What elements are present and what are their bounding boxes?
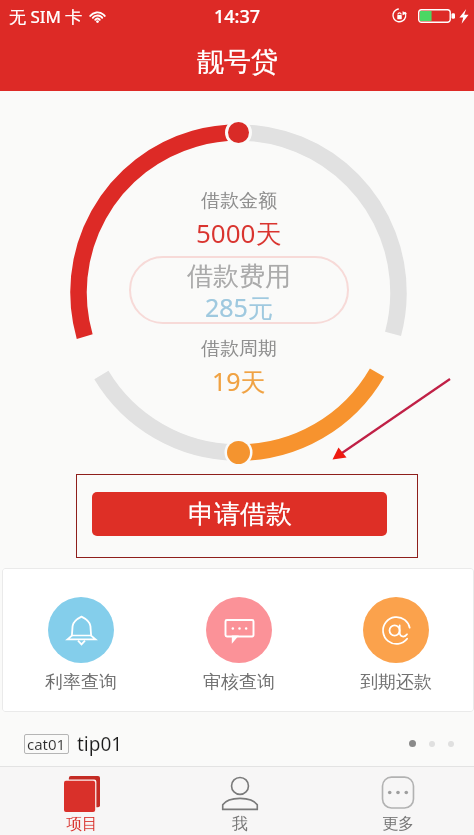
staticText: 靓号贷 <box>197 45 278 79</box>
button[interactable]: 审核查询 <box>160 568 317 712</box>
staticText: 借款费用 <box>187 260 291 293</box>
staticText: 借款周期 <box>201 337 277 361</box>
staticText: 项目 <box>66 814 98 834</box>
staticText: 285元 <box>205 290 273 324</box>
staticText: 5000天 <box>196 215 282 251</box>
button[interactable]: 项目 <box>3 767 161 835</box>
staticText: 我 <box>232 814 248 834</box>
staticText: 19天 <box>212 364 266 398</box>
staticText: 利率查询 <box>45 671 117 694</box>
staticText: 借款金额 <box>201 189 277 213</box>
staticText: 到期还款 <box>360 671 432 694</box>
button[interactable]: 申请借款 <box>92 492 387 536</box>
staticText: tip01 <box>77 731 123 757</box>
staticText: 更多 <box>382 814 414 834</box>
staticText: 14:37 <box>214 4 261 29</box>
button[interactable]: 利率查询 <box>2 568 160 712</box>
button[interactable]: cat01 <box>24 731 123 757</box>
button[interactable]: 我 <box>161 767 319 835</box>
button[interactable]: 更多 <box>319 767 474 835</box>
button[interactable]: 到期还款 <box>317 568 474 712</box>
staticText: 审核查询 <box>203 671 275 694</box>
staticText: 申请借款 <box>188 498 292 531</box>
staticText: cat01 <box>27 734 66 754</box>
staticText: 无 SIM 卡 <box>9 5 83 28</box>
